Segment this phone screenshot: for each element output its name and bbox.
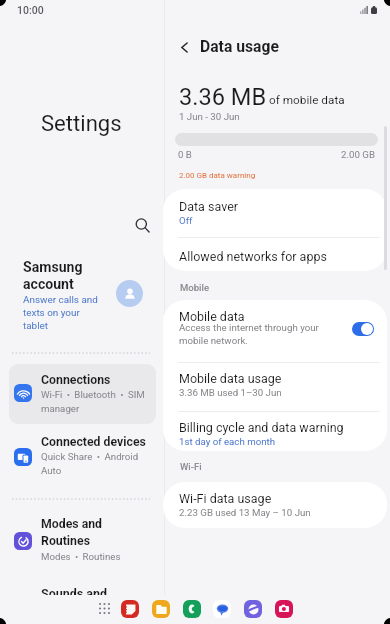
button[interactable]: Mobile data toggle [352, 322, 374, 336]
staticText: Connected devices [41, 435, 146, 449]
staticText: Allowed networks for apps [179, 249, 327, 264]
staticText: account [23, 276, 74, 293]
staticText: of mobile data [269, 93, 345, 107]
staticText: Billing cycle and data warning [179, 420, 344, 435]
staticText: 2.23 GB used 13 May – 10 Jun [179, 507, 311, 518]
button[interactable]: Search [128, 211, 156, 239]
staticText: Wi-Fi [180, 461, 202, 472]
staticText: Wi-Fi • Bluetooth • SIM manager [41, 389, 145, 414]
staticText: Mobile [180, 282, 209, 293]
staticText: Settings [41, 110, 122, 136]
staticText: Mobile data [179, 309, 245, 324]
staticText: 0 B [178, 149, 192, 160]
staticText: 3.36 MB used 1–30 Jun [179, 387, 282, 398]
button[interactable] [9, 512, 156, 570]
staticText: Quick Share • Android Auto [41, 451, 139, 476]
staticText: 3.36 MB [179, 83, 267, 111]
button[interactable]: App [244, 600, 262, 618]
button[interactable] [9, 364, 156, 424]
button[interactable]: Samsung [23, 259, 143, 331]
button[interactable]: App [121, 600, 139, 618]
staticText: Answer calls and texts on your tablet [23, 294, 98, 331]
staticText: Wi-Fi data usage [179, 491, 272, 506]
staticText: 2.00 GB [341, 149, 375, 160]
staticText: Access the internet through your mobile … [179, 322, 319, 347]
button[interactable]: App [152, 600, 170, 618]
staticText: Sounds and [41, 586, 108, 601]
button[interactable]: App [183, 600, 201, 618]
staticText: Data usage [200, 37, 279, 55]
staticText: Data saver [179, 199, 238, 214]
staticText: Modes and Routines [41, 517, 103, 548]
staticText: Off [179, 215, 193, 226]
staticText: Mobile data usage [179, 371, 282, 386]
staticText: Connections [41, 373, 111, 387]
button[interactable]: Back [171, 34, 197, 60]
staticText: Samsung [23, 259, 83, 276]
button[interactable] [9, 576, 156, 594]
staticText: 10:00 [17, 4, 44, 16]
staticText: 2.00 GB data warning [179, 171, 256, 180]
staticText: Modes • Routines [41, 551, 121, 562]
button[interactable] [9, 430, 156, 486]
staticText: 1 Jun - 30 Jun [179, 111, 240, 122]
button[interactable]: All apps [93, 597, 115, 619]
staticText: 1st day of each month [179, 436, 276, 447]
button[interactable]: App [213, 600, 231, 618]
button[interactable]: App [275, 600, 293, 618]
